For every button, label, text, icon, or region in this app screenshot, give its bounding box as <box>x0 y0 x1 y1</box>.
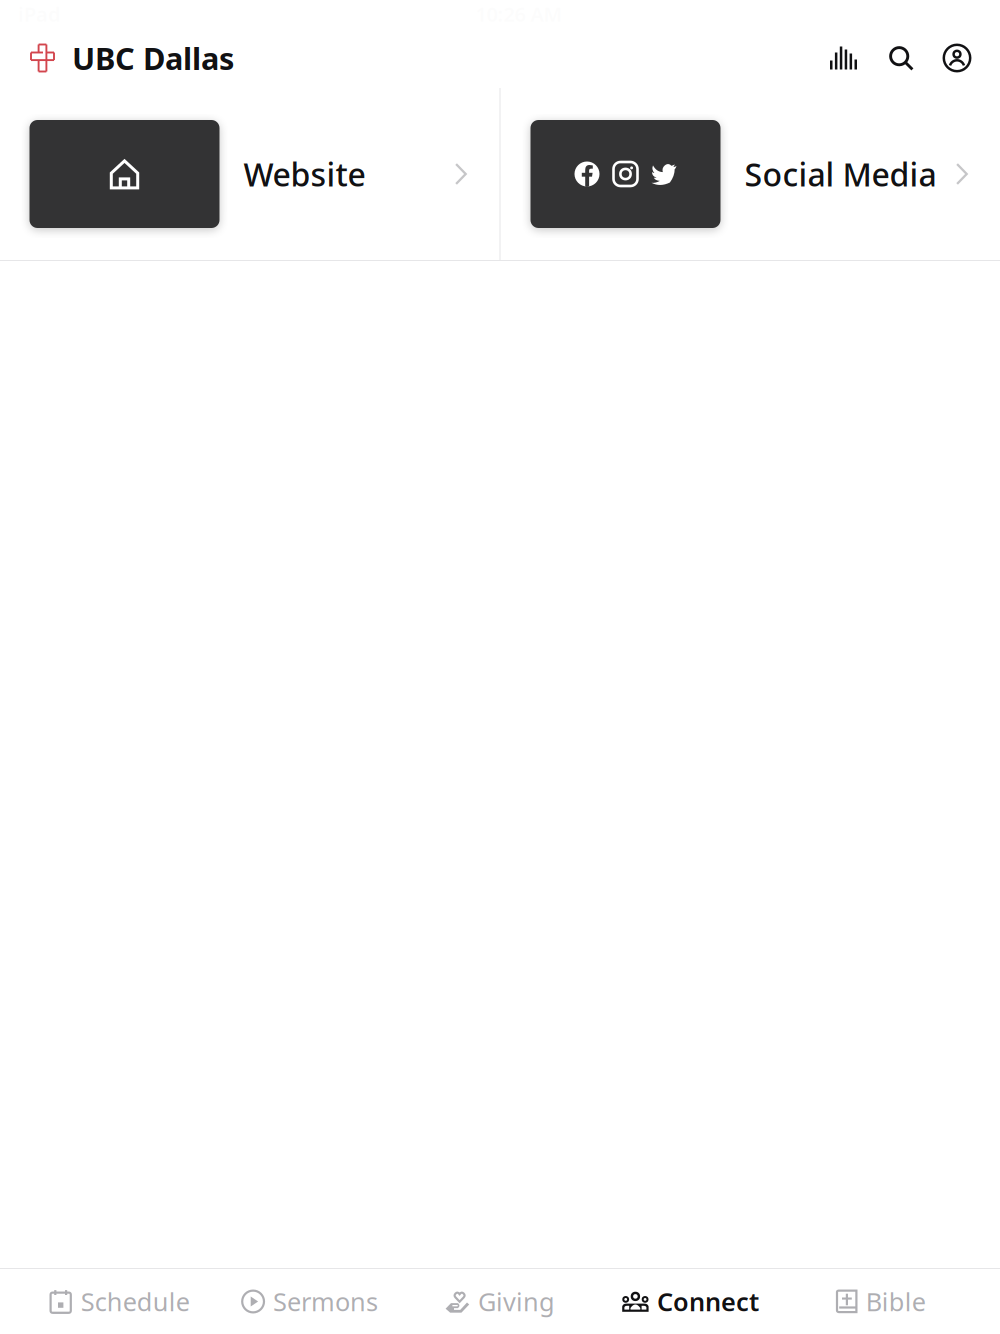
button[interactable]: Audio <box>830 46 857 69</box>
staticText: Connect <box>657 1285 759 1318</box>
button[interactable]: Website <box>0 88 499 260</box>
button[interactable]: Connect <box>595 1269 786 1334</box>
staticText: Bible <box>866 1285 926 1318</box>
button[interactable]: Account <box>915 43 972 73</box>
button[interactable]: Schedule <box>24 1269 214 1334</box>
button[interactable]: Search <box>857 44 915 72</box>
staticText: Social Media <box>744 153 936 195</box>
staticText: Website <box>243 153 365 195</box>
staticText: Schedule <box>81 1285 190 1318</box>
staticText: UBC Dallas <box>72 38 234 78</box>
staticText: Sermons <box>273 1285 378 1318</box>
button[interactable]: Giving <box>405 1269 595 1334</box>
button[interactable]: Social Media <box>500 88 1000 260</box>
button[interactable]: Bible <box>786 1269 976 1334</box>
staticText: Giving <box>478 1285 555 1318</box>
button[interactable]: Sermons <box>214 1269 405 1334</box>
